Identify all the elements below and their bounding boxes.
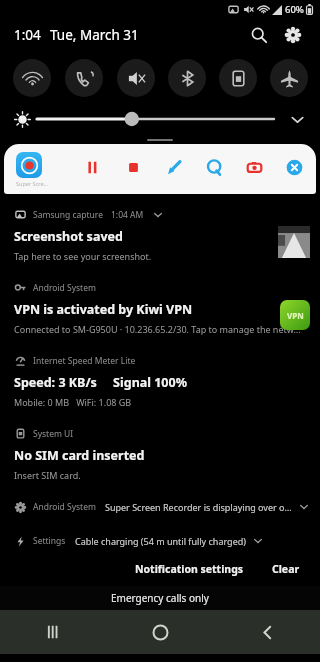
button[interactable]: Search — [244, 20, 274, 50]
button[interactable]: Settings — [14, 530, 310, 552]
button[interactable]: Android System — [14, 496, 310, 518]
staticText: 60% — [285, 3, 304, 16]
staticText: Screenshot saved — [14, 228, 123, 245]
button[interactable]: Expand notification — [298, 501, 310, 513]
staticText: Connected to SM-G950U · 10.236.65.2/30. … — [14, 323, 301, 335]
button[interactable] — [37, 107, 278, 131]
button[interactable]: Super Scre… — [4, 144, 316, 194]
button[interactable]: Notification settings — [129, 558, 250, 580]
staticText: 1:04 AM — [111, 209, 144, 221]
button[interactable]: Wi-Fi — [13, 59, 51, 97]
staticText: 1:04 — [14, 26, 41, 44]
button[interactable]: Call — [65, 59, 103, 97]
button[interactable]: Expand notification — [152, 209, 164, 221]
staticText: Super Scre… — [16, 180, 48, 187]
staticText: Android System — [33, 282, 96, 294]
button[interactable]: Pause — [78, 153, 106, 181]
button[interactable]: Show touches — [200, 153, 228, 181]
staticText: Cable charging (54 m until fully charged… — [75, 535, 246, 547]
staticText: Clear — [272, 562, 300, 576]
staticText: Tap here to see your screenshot. — [14, 250, 152, 262]
button[interactable]: Bluetooth — [168, 59, 206, 97]
button[interactable]: Expand brightness settings — [284, 106, 310, 132]
staticText: Internet Speed Meter Lite — [33, 355, 136, 367]
button[interactable]: Draw — [160, 153, 188, 181]
button[interactable]: Mobile data — [219, 59, 257, 97]
staticText: Speed: 3 KB/s Signal 100% — [14, 374, 187, 391]
staticText: System UI — [33, 428, 74, 440]
button[interactable]: Home — [138, 610, 182, 654]
button[interactable]: Settings — [278, 20, 308, 50]
button[interactable]: Stop — [119, 153, 147, 181]
staticText: VPN — [287, 310, 304, 321]
button[interactable]: Airplane mode — [270, 59, 308, 97]
button[interactable]: Close — [280, 153, 308, 181]
staticText: Mobile: 0 MB WiFi: 1.08 GB — [14, 396, 132, 408]
button[interactable]: Internet Speed Meter Lite — [0, 348, 320, 421]
button[interactable]: Recents — [31, 610, 75, 654]
button[interactable]: Android System — [0, 275, 320, 348]
staticText: VPN is activated by Kiwi VPN — [14, 301, 193, 318]
staticText: No SIM card inserted — [14, 447, 145, 464]
button[interactable]: Mute — [117, 59, 155, 97]
staticText: Insert SIM card. — [14, 469, 81, 481]
staticText: Android System — [33, 501, 96, 513]
button[interactable]: Back — [245, 610, 289, 654]
button[interactable]: Samsung capture — [0, 202, 320, 275]
staticText: Settings — [33, 535, 66, 547]
staticText: Super Screen Recorder is displaying over… — [105, 501, 292, 513]
button[interactable]: Camera — [240, 153, 268, 181]
button[interactable]: Expand notification — [252, 535, 264, 547]
staticText: Samsung capture — [33, 209, 103, 221]
button[interactable]: Clear — [266, 558, 306, 580]
button[interactable]: System UI — [0, 421, 320, 494]
staticText: Notification settings — [135, 562, 244, 576]
staticText: Emergency calls only — [111, 591, 209, 605]
staticText: Tue, March 31 — [50, 26, 139, 44]
